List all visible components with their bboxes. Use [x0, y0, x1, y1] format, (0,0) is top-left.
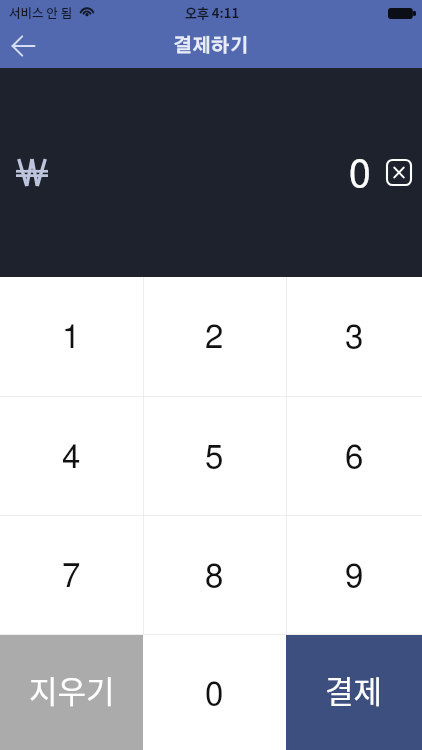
button[interactable]: 3 — [286, 277, 422, 396]
staticText: 결제 — [325, 667, 383, 712]
staticText: 0 — [205, 679, 224, 712]
button[interactable]: 2 — [143, 277, 286, 396]
staticText: 7 — [62, 561, 81, 594]
button[interactable]: 8 — [143, 516, 286, 634]
staticText: 1 — [62, 322, 81, 355]
staticText: 서비스 안 됨 — [9, 3, 73, 21]
staticText: 6 — [345, 442, 364, 475]
staticText: 8 — [205, 561, 224, 594]
button[interactable]: 9 — [286, 516, 422, 634]
staticText: 오후 4:11 — [185, 3, 240, 22]
staticText: 5 — [205, 442, 224, 475]
staticText: 9 — [345, 561, 364, 594]
staticText: 3 — [345, 322, 364, 355]
staticText: 결제하기 — [173, 37, 249, 56]
button[interactable]: 7 — [0, 516, 143, 634]
button[interactable]: 1 — [0, 277, 143, 396]
button[interactable]: 6 — [286, 397, 422, 515]
button[interactable]: Back — [0, 26, 46, 68]
button[interactable]: 0 — [143, 635, 286, 750]
staticText: 2 — [205, 322, 224, 355]
staticText: 0 — [349, 156, 371, 195]
button[interactable]: 5 — [143, 397, 286, 515]
button[interactable]: Delete — [386, 159, 412, 186]
staticText: 4 — [62, 442, 81, 475]
button[interactable]: 결제 — [286, 635, 422, 750]
button[interactable]: 4 — [0, 397, 143, 515]
staticText: 지우기 — [29, 667, 115, 712]
button[interactable]: 지우기 — [0, 635, 143, 750]
